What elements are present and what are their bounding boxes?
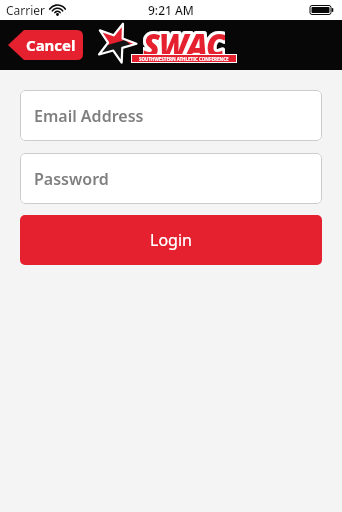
button[interactable]: Cancel — [8, 30, 83, 60]
staticText: SOUTHWESTERN ATHLETIC CONFERENCE — [139, 56, 229, 62]
staticText: Cancel — [26, 35, 76, 55]
staticText: SWAC — [143, 24, 225, 56]
staticText: Carrier — [6, 2, 46, 18]
staticText: SWAC — [143, 24, 225, 56]
button[interactable]: Login — [20, 215, 322, 265]
staticText: Email Address — [34, 105, 144, 127]
staticText: 9:21 AM — [148, 2, 194, 18]
button[interactable]: Password — [20, 153, 322, 204]
button[interactable]: Email Address — [20, 90, 322, 141]
staticText: Password — [34, 168, 109, 190]
staticText: Login — [150, 229, 192, 251]
